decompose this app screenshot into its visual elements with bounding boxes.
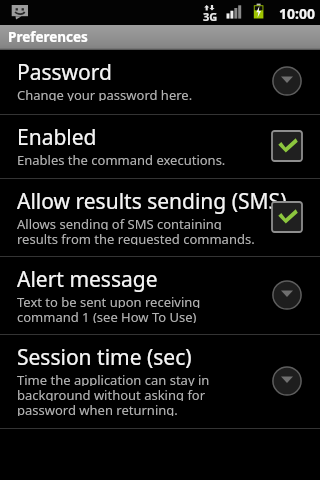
staticText: Text to be sent upon receiving: [17, 293, 201, 308]
button[interactable]: Allow results sending (SMS): [0, 179, 320, 256]
button[interactable]: Open setting: [265, 59, 309, 103]
button[interactable]: Toggle setting: [265, 124, 309, 168]
staticText: Enabled: [17, 123, 97, 152]
staticText: 3G: [203, 9, 218, 24]
button[interactable]: Alert message: [0, 257, 320, 334]
staticText: results from the requested commands.: [17, 230, 255, 245]
staticText: Enables the command executions.: [17, 151, 226, 166]
staticText: Password: [17, 58, 112, 87]
staticText: command 1 (see How To Use): [17, 308, 197, 323]
button[interactable]: Session time (sec): [0, 335, 320, 428]
staticText: Time the application can stay in: [17, 371, 210, 386]
staticText: password when returning.: [17, 401, 178, 416]
button[interactable]: Password: [0, 50, 320, 114]
staticText: Allows sending of SMS containing: [17, 215, 222, 230]
staticText: Change your password here.: [17, 86, 193, 101]
button[interactable]: Toggle setting: [265, 195, 309, 239]
button[interactable]: Open setting: [265, 273, 309, 317]
staticText: Alert message: [17, 265, 158, 294]
staticText: Allow results sending (SMS): [17, 187, 287, 216]
staticText: Preferences: [8, 28, 88, 46]
staticText: 10:00: [279, 4, 315, 23]
button[interactable]: Open setting: [265, 359, 309, 403]
button[interactable]: Enabled: [0, 115, 320, 178]
staticText: background without asking for: [17, 386, 206, 401]
staticText: Session time (sec): [17, 343, 192, 372]
